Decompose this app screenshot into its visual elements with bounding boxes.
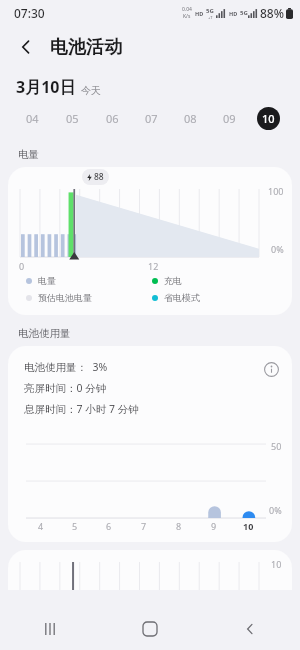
staticText: 10 xyxy=(243,520,254,532)
staticText: 0.04 xyxy=(182,6,192,13)
button[interactable]: Home xyxy=(100,608,200,650)
button[interactable]: Back xyxy=(200,608,300,650)
staticText: 省电模式 xyxy=(164,292,200,303)
staticText: 4 xyxy=(38,520,44,532)
button[interactable]: Back xyxy=(10,31,42,63)
button[interactable]: 06 xyxy=(92,101,132,135)
staticText: 9 xyxy=(211,520,217,532)
staticText: 0% xyxy=(271,243,284,255)
staticText: 7 xyxy=(141,520,147,532)
staticText: 5G xyxy=(206,7,214,15)
staticText: 电池使用量： 3% xyxy=(24,360,108,374)
button[interactable]: 10 xyxy=(249,101,288,135)
button[interactable]: 电池使用量： 3% xyxy=(8,346,292,542)
button[interactable]: 08 xyxy=(171,101,210,135)
staticText: 8 xyxy=(176,520,182,532)
button[interactable]: 04 xyxy=(12,101,52,135)
staticText: 12 xyxy=(148,260,159,272)
staticText: 0 xyxy=(19,260,25,272)
staticText: 电量 xyxy=(18,148,39,161)
button[interactable]: 09 xyxy=(210,101,249,135)
staticText: 04 xyxy=(26,111,39,126)
staticText: 88 xyxy=(94,171,104,183)
staticText: K/s xyxy=(183,13,191,20)
button[interactable]: 05 xyxy=(52,101,92,135)
button[interactable]: 10 xyxy=(8,550,292,590)
staticText: 电池活动 xyxy=(50,36,122,59)
staticText: 3月10日 xyxy=(16,76,76,98)
button[interactable]: 100 xyxy=(8,167,292,315)
staticText: 10 xyxy=(262,111,275,126)
staticText: 亮屏时间：0 分钟 xyxy=(24,381,107,395)
staticText: 05 xyxy=(66,111,79,126)
staticText: +T xyxy=(208,15,213,20)
staticText: 50 xyxy=(271,440,282,452)
staticText: 电量 xyxy=(38,275,56,286)
staticText: 充电 xyxy=(164,275,182,286)
button[interactable]: 07 xyxy=(132,101,171,135)
staticText: 88% xyxy=(260,5,284,21)
staticText: 今天 xyxy=(81,84,101,97)
staticText: 息屏时间：7 小时 7 分钟 xyxy=(24,402,139,416)
staticText: 08 xyxy=(184,111,197,126)
staticText: 5 xyxy=(72,520,78,532)
staticText: 6 xyxy=(106,520,112,532)
staticText: 09 xyxy=(223,111,236,126)
staticText: 07 xyxy=(145,111,158,126)
button[interactable]: Recents xyxy=(0,608,100,650)
staticText: 10 xyxy=(271,558,282,570)
staticText: 06 xyxy=(106,111,119,126)
staticText: HD xyxy=(229,10,238,17)
button[interactable]: Info xyxy=(258,356,284,382)
staticText: 电池使用量 xyxy=(18,327,71,340)
staticText: 100 xyxy=(268,185,284,197)
staticText: HD xyxy=(195,10,204,17)
staticText: 预估电池电量 xyxy=(38,292,92,303)
staticText: 5G xyxy=(240,9,248,17)
staticText: 0% xyxy=(269,504,282,516)
staticText: 07:30 xyxy=(14,5,45,21)
